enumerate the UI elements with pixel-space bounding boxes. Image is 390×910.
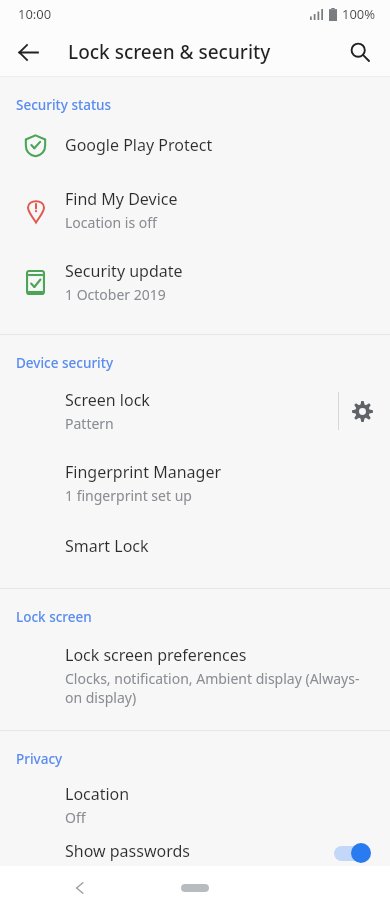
staticText: Find My Device (65, 188, 178, 210)
staticText: Security status (16, 96, 112, 114)
button[interactable]: Google Play Protect (0, 116, 390, 174)
button[interactable]: Show passwords toggle (332, 841, 372, 865)
staticText: Lock screen preferences (65, 644, 247, 666)
staticText: Clocks, notification, Ambient display (A… (65, 669, 360, 707)
staticText: Show passwords (65, 840, 190, 862)
staticText: Fingerprint Manager (65, 461, 222, 483)
button[interactable]: Lock screen preferences (0, 628, 390, 722)
button[interactable]: Location (0, 770, 390, 840)
staticText: Location is off (65, 213, 157, 232)
button[interactable]: Screen lock settings (324, 374, 386, 448)
button[interactable]: Screen lock (0, 374, 390, 448)
staticText: Pattern (65, 414, 114, 433)
button[interactable]: Fingerprint Manager (0, 448, 390, 518)
staticText: Lock screen & security (68, 39, 271, 65)
button[interactable]: Search (338, 30, 382, 74)
button[interactable]: Smart Lock (0, 518, 390, 574)
button[interactable]: Find My Device (0, 174, 390, 246)
staticText: Device security (16, 354, 114, 372)
staticText: Smart Lock (65, 535, 149, 557)
button[interactable]: Back (6, 30, 50, 74)
staticText: Off (65, 808, 86, 827)
staticText: Security update (65, 260, 183, 282)
staticText: 1 October 2019 (65, 285, 166, 304)
staticText: 100% (342, 5, 376, 23)
staticText: Location (65, 783, 130, 805)
button[interactable]: Back (60, 868, 100, 908)
staticText: 10:00 (18, 5, 52, 23)
staticText: Google Play Protect (65, 134, 213, 156)
button[interactable]: Security update (0, 246, 390, 318)
button[interactable]: Home (167, 873, 223, 903)
staticText: 1 fingerprint set up (65, 486, 192, 505)
staticText: Screen lock (65, 389, 150, 411)
staticText: Privacy (16, 750, 63, 768)
staticText: Lock screen (16, 608, 92, 626)
button[interactable]: Show passwords (0, 840, 390, 866)
